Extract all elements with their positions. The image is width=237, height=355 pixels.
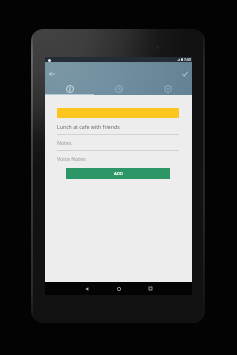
button[interactable]: Notes	[57, 137, 179, 151]
staticText: Lunch at cafe with friends	[57, 123, 120, 130]
staticText: 7:30	[184, 57, 191, 61]
button[interactable]: Lunch at cafe with friends	[57, 121, 179, 135]
button[interactable]: Reminders	[94, 82, 143, 95]
staticText: ADD	[114, 171, 123, 177]
button[interactable]: Save	[178, 66, 192, 82]
button[interactable]: Navigate up	[45, 66, 59, 82]
button[interactable]: Back	[81, 283, 92, 294]
button[interactable]: Voice Notes	[57, 155, 86, 162]
button[interactable]: Recent apps	[145, 283, 156, 294]
button[interactable]: Privacy	[143, 82, 192, 95]
button[interactable]: Home	[113, 283, 124, 294]
staticText: Notes	[57, 139, 72, 146]
button[interactable]: ADD	[66, 168, 170, 179]
button[interactable]: Details	[45, 82, 94, 95]
